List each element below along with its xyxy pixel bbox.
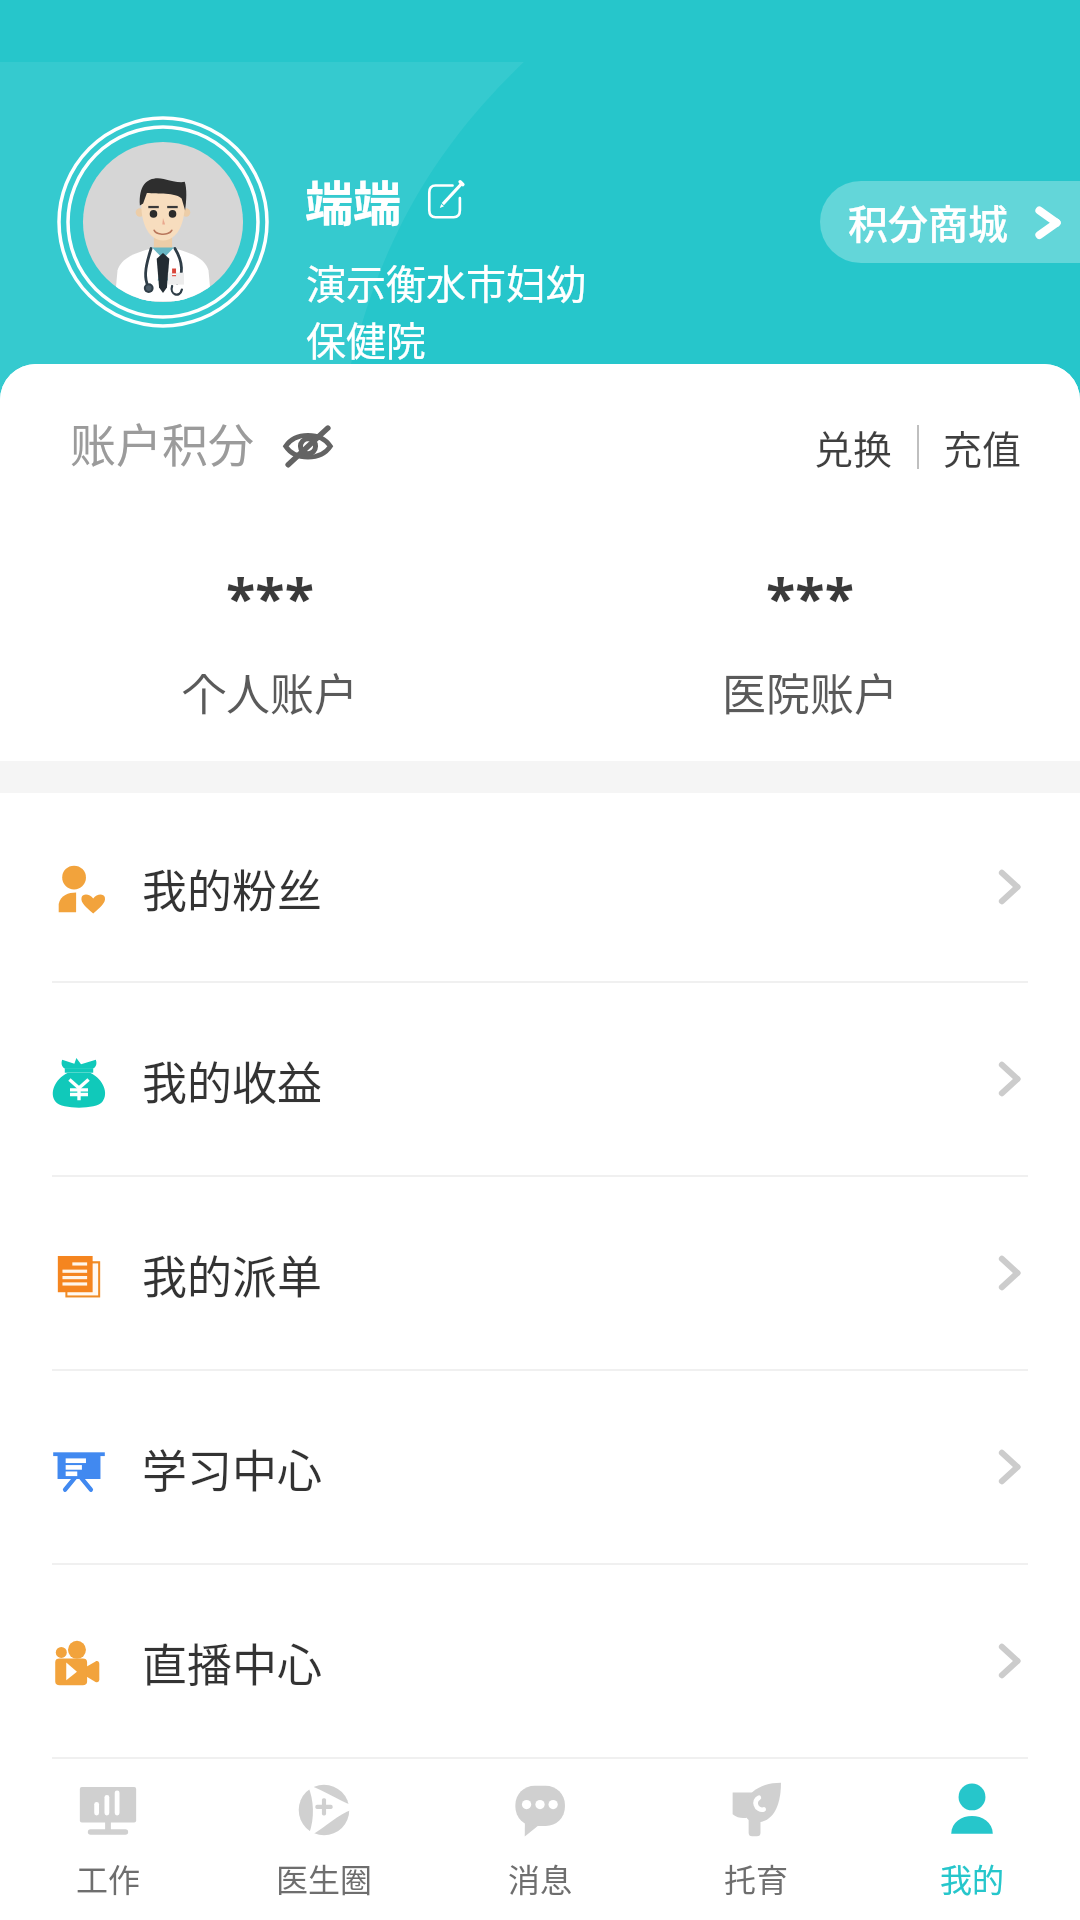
staticText: 医院账户 [722,660,898,724]
staticText: 医生圈 [276,1855,373,1901]
staticText: 我的收益 [142,1048,323,1113]
button[interactable]: *** [540,560,1080,730]
button[interactable]: 积分商城 [820,181,1080,263]
button[interactable]: 消息 [432,1763,648,1920]
staticText: 兑换 [814,419,893,475]
button[interactable]: 我的 [864,1763,1080,1920]
staticText: *** [226,560,314,634]
button[interactable]: 医生圈 [216,1763,432,1920]
staticText: 学习中心 [142,1436,323,1501]
button[interactable]: *** [0,560,540,730]
button[interactable]: 我的派单 [0,1177,1080,1369]
button[interactable]: 托育 [648,1763,864,1920]
button[interactable]: 充值 [943,419,1022,475]
button[interactable]: 兑换 [814,419,893,475]
staticText: 消息 [508,1855,573,1901]
button[interactable]: 学习中心 [0,1371,1080,1563]
button[interactable]: 我的收益 [0,983,1080,1175]
staticText: 演示衡水市妇幼 保健院 [306,253,586,367]
staticText: 端端 [305,165,402,235]
staticText: 工作 [76,1855,141,1901]
button[interactable]: Toggle points visibility [280,418,336,474]
staticText: 我的 [940,1855,1005,1901]
staticText: *** [766,560,854,634]
staticText: 直播中心 [142,1630,323,1695]
staticText: 积分商城 [848,193,1008,251]
staticText: 我的粉丝 [142,856,323,921]
staticText: 我的派单 [142,1242,323,1307]
button[interactable]: Edit profile name [424,177,470,223]
staticText: 充值 [943,419,1022,475]
staticText: 个人账户 [182,660,358,724]
staticText: 托育 [724,1855,789,1901]
staticText: 账户积分 [70,409,254,476]
button[interactable]: 直播中心 [0,1565,1080,1757]
button[interactable]: 工作 [0,1763,216,1920]
button[interactable]: 我的粉丝 [0,793,1080,981]
